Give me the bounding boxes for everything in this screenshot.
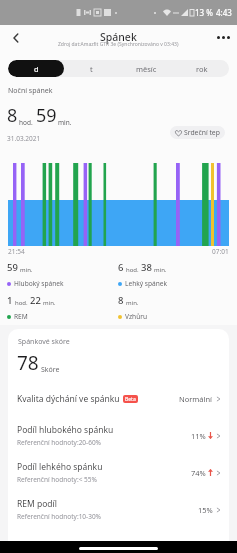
staticText: t bbox=[90, 64, 93, 74]
staticText: Kvalita dýchání ve spánku bbox=[17, 393, 120, 405]
button[interactable]: Spánkové skóre bbox=[8, 329, 229, 381]
button[interactable]: Podíl lehkého spánku bbox=[8, 454, 229, 491]
staticText: REM bbox=[14, 312, 28, 321]
staticText: 13 % bbox=[195, 7, 213, 18]
staticText: Noční spánek bbox=[8, 86, 53, 96]
staticText: 59 bbox=[7, 261, 18, 274]
button[interactable]: d bbox=[8, 60, 64, 77]
button[interactable]: měsíc bbox=[119, 60, 174, 77]
staticText: Normální bbox=[179, 394, 213, 404]
staticText: 38 bbox=[141, 261, 152, 274]
staticText: Skóre bbox=[41, 365, 60, 375]
staticText: 11% bbox=[191, 431, 206, 441]
staticText: 07:01 bbox=[212, 247, 229, 256]
button[interactable]: Kvalita dýchání ve spánku bbox=[8, 381, 229, 417]
staticText: Vzhůru bbox=[125, 312, 148, 321]
staticText: Lehký spánek bbox=[125, 279, 168, 288]
staticText: REM podíl bbox=[17, 498, 57, 510]
button[interactable]: More options bbox=[213, 27, 234, 48]
staticText: 78 bbox=[17, 350, 39, 376]
staticText: Spánek bbox=[100, 30, 137, 44]
staticText: 8 bbox=[7, 103, 18, 128]
staticText: min. bbox=[20, 266, 33, 274]
button[interactable]: Podíl hlubokého spánku bbox=[8, 417, 229, 454]
staticText: Referenční hodnoty:20-60% bbox=[17, 438, 102, 447]
button[interactable]: Back bbox=[5, 27, 26, 48]
button[interactable]: Srdeční tep bbox=[170, 126, 225, 139]
button[interactable]: rok bbox=[174, 60, 229, 77]
staticText: hod. bbox=[19, 118, 33, 127]
staticText: d bbox=[34, 64, 39, 74]
staticText: 15% bbox=[198, 505, 213, 515]
staticText: hod. bbox=[126, 266, 139, 274]
staticText: měsíc bbox=[136, 64, 157, 74]
staticText: min. bbox=[154, 266, 167, 274]
staticText: Referenční hodnoty:< 55% bbox=[17, 475, 97, 484]
staticText: hod. bbox=[15, 299, 28, 307]
button[interactable]: t bbox=[64, 60, 119, 77]
staticText: 22 bbox=[30, 294, 41, 307]
staticText: Hluboký spánek bbox=[14, 279, 64, 288]
staticText: min. bbox=[43, 299, 56, 307]
staticText: 4:43 bbox=[216, 7, 232, 18]
button[interactable]: REM podíl bbox=[8, 491, 229, 528]
staticText: 8 bbox=[118, 294, 124, 307]
staticText: Srdeční tep bbox=[184, 128, 220, 137]
staticText: Podíl hlubokého spánku bbox=[17, 424, 114, 436]
staticText: Beta bbox=[125, 396, 136, 403]
staticText: 59 bbox=[36, 103, 57, 128]
staticText: 6 bbox=[118, 261, 124, 274]
staticText: min. bbox=[126, 299, 139, 307]
staticText: Referenční hodnoty:10-30% bbox=[17, 512, 102, 521]
staticText: 21:54 bbox=[8, 247, 25, 256]
staticText: min. bbox=[58, 118, 72, 127]
staticText: Podíl lehkého spánku bbox=[17, 461, 103, 473]
staticText: 31.03.2021 bbox=[7, 134, 41, 143]
staticText: rok bbox=[196, 64, 208, 74]
staticText: 74% bbox=[191, 468, 206, 478]
staticText: Spánkové skóre bbox=[18, 337, 70, 347]
staticText: 1 bbox=[7, 294, 13, 307]
staticText: Zdroj dat:Amazfit GTR 3e (Synchronizován… bbox=[58, 41, 179, 48]
